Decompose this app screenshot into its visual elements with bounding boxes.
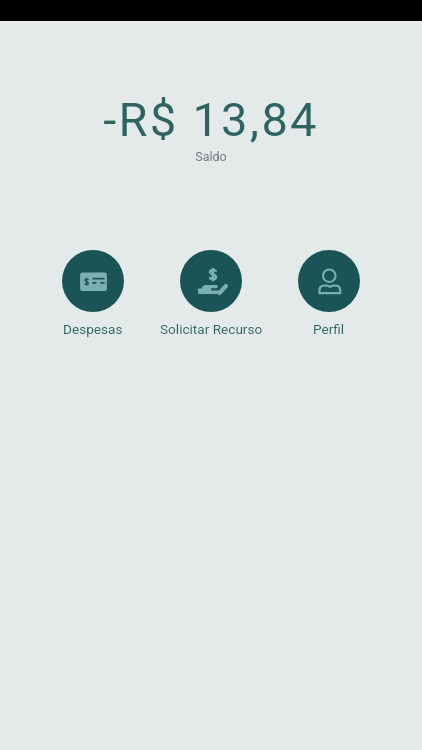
staticText: Perfil bbox=[313, 321, 345, 337]
staticText: Despesas bbox=[63, 321, 123, 337]
button[interactable]: Perfil bbox=[298, 250, 360, 312]
staticText: -R$ 13,84 bbox=[0, 92, 422, 147]
button[interactable]: Despesas bbox=[62, 250, 124, 312]
staticText: Saldo bbox=[0, 149, 422, 164]
staticText: Solicitar Recurso bbox=[160, 321, 263, 337]
button[interactable]: Solicitar Recurso bbox=[180, 250, 242, 312]
